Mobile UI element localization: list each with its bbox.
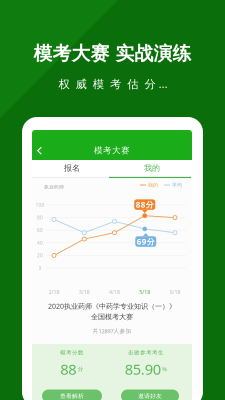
staticText: 2020执业药师《中药学专业知识（一）》 <box>48 301 176 311</box>
staticText: 全国模考大赛 <box>91 312 133 321</box>
staticText: 平均 <box>172 182 182 188</box>
staticText: 模考分数 <box>60 349 84 356</box>
button[interactable]: 邀请好友 <box>121 389 179 400</box>
staticText: 模考大赛 实战演练 <box>33 42 191 65</box>
button[interactable]: 查看解析 <box>42 389 102 400</box>
staticText: 88 <box>60 359 76 379</box>
button[interactable]: 我的 <box>112 160 192 176</box>
staticText: 5/18 <box>139 288 150 296</box>
staticText: 6/18 <box>169 288 180 296</box>
staticText: 报名 <box>64 163 80 173</box>
staticText: 80 <box>37 214 43 221</box>
staticText: 我的 <box>144 163 160 173</box>
staticText: 我的 <box>148 182 158 188</box>
staticText: 共12897人参加 <box>92 327 131 335</box>
button[interactable]: 返回 <box>34 143 48 159</box>
staticText: 分 <box>78 365 84 373</box>
button[interactable]: 报名 <box>32 160 112 176</box>
staticText: 执业药师 <box>44 184 64 190</box>
staticText: 0 <box>38 265 41 271</box>
staticText: 4/18 <box>109 288 120 296</box>
staticText: 88分 <box>136 199 154 210</box>
staticText: 3/18 <box>79 288 90 296</box>
staticText: 20 <box>37 252 43 259</box>
staticText: 模考大赛 <box>94 145 130 156</box>
staticText: 85.90 <box>125 359 161 379</box>
staticText: 2/18 <box>48 288 59 296</box>
staticText: 100 <box>35 202 44 208</box>
staticText: 40 <box>37 239 43 246</box>
staticText: 查看解析 <box>60 392 84 400</box>
staticText: 邀请好友 <box>138 392 162 400</box>
staticText: 权威模考估分准 <box>58 76 173 90</box>
staticText: 60 <box>37 227 43 233</box>
staticText: 击败参考考生 <box>128 349 164 356</box>
staticText: % <box>162 365 167 373</box>
staticText: 69分 <box>137 236 155 247</box>
